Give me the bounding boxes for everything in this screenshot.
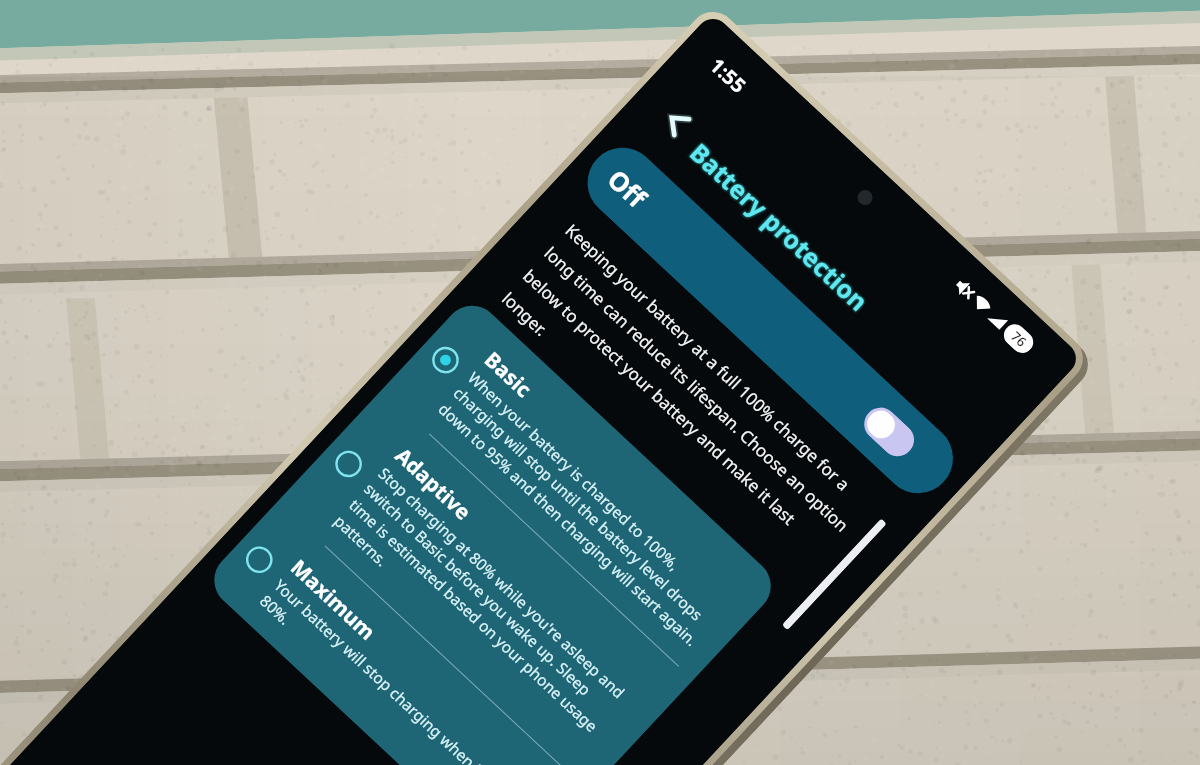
staticText: Battery protection (683, 135, 876, 318)
staticText: Your battery will stop charging when it … (256, 574, 535, 765)
staticText: Battery protection (685, 134, 878, 317)
staticText: When your battery is charged to 100%, ch… (435, 367, 732, 650)
button[interactable]: Navigate up (654, 100, 700, 145)
staticText: Battery protection (684, 134, 877, 317)
staticText: Battery protection (685, 136, 878, 320)
staticText: Battery protection (683, 138, 876, 321)
staticText: Stop charging at 80% while you're asleep… (330, 462, 632, 752)
staticText: 76 (1007, 327, 1030, 351)
staticText: Battery protection (683, 136, 875, 319)
staticText: Battery protection (682, 134, 875, 317)
staticText: Off (601, 161, 655, 215)
staticText: 1:55 (704, 52, 752, 99)
staticText: Keeping your battery at a full 100% char… (497, 219, 878, 585)
staticText: Battery protection (683, 134, 875, 318)
staticText: Adaptive (389, 441, 477, 527)
staticText: Battery protection (683, 132, 876, 315)
staticText: Battery protection (683, 137, 876, 320)
staticText: Battery protection (685, 135, 878, 318)
staticText: Battery protection (686, 135, 879, 318)
button[interactable]: Basic (381, 294, 782, 680)
staticText: Battery protection (684, 136, 877, 319)
staticText: Battery protection (682, 135, 875, 318)
staticText: Battery protection (680, 135, 873, 318)
staticText: Battery protection (682, 137, 875, 320)
staticText: Battery protection (683, 134, 876, 317)
button[interactable]: Maximum (203, 502, 589, 765)
button[interactable]: Adaptive (277, 390, 693, 765)
button[interactable]: Off (573, 133, 967, 508)
staticText: Basic (478, 345, 538, 404)
staticText: Maximum (285, 553, 382, 647)
